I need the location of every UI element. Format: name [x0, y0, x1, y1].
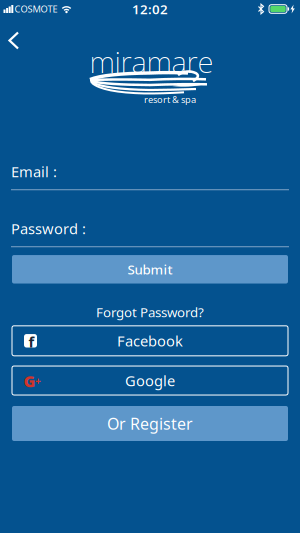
staticText: resort & spa: [144, 93, 196, 106]
button[interactable]: Email :: [11, 164, 289, 188]
button[interactable]: G: [12, 366, 288, 395]
staticText: Facebook: [117, 331, 183, 351]
button[interactable]: Submit: [12, 255, 288, 284]
button[interactable]: Or Register: [12, 406, 288, 441]
button[interactable]: f: [12, 326, 288, 356]
staticText: Forgot Password?: [96, 303, 204, 321]
staticText: COSMOTE: [14, 3, 57, 15]
staticText: Or Register: [107, 413, 193, 434]
staticText: G: [23, 370, 35, 392]
staticText: +: [35, 373, 41, 388]
staticText: f: [28, 332, 34, 352]
staticText: Google: [125, 371, 175, 390]
button[interactable]: Back: [0, 24, 28, 56]
staticText: miramare: [89, 42, 213, 81]
button[interactable]: Password :: [11, 221, 289, 245]
staticText: Password :: [11, 219, 86, 238]
staticText: Submit: [127, 260, 172, 278]
staticText: 12:02: [132, 0, 168, 18]
button[interactable]: Forgot Password?: [96, 303, 204, 321]
staticText: Email :: [11, 162, 57, 181]
